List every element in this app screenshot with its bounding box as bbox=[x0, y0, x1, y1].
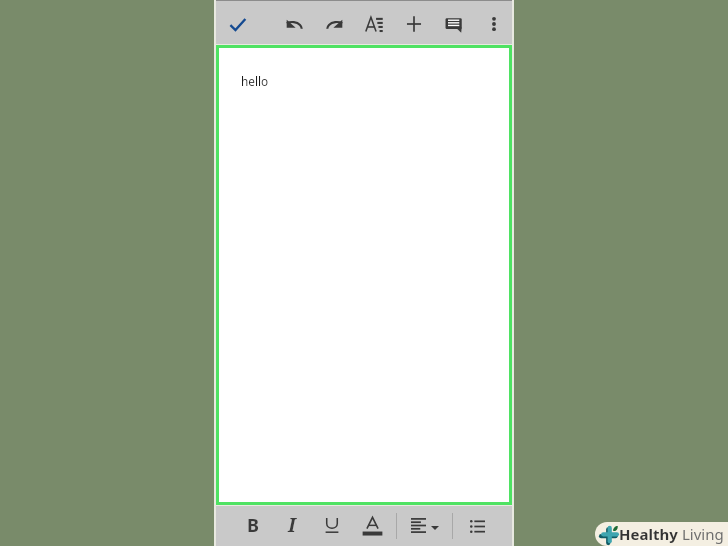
staticText: hello bbox=[241, 73, 269, 89]
staticText: I bbox=[288, 512, 296, 538]
button[interactable]: Bold bbox=[236, 508, 270, 542]
button[interactable]: Redo bbox=[317, 7, 351, 41]
staticText: B bbox=[247, 513, 259, 538]
button[interactable]: Done bbox=[221, 7, 255, 41]
button[interactable]: Insert bbox=[397, 7, 431, 41]
button[interactable]: Italic bbox=[275, 508, 309, 542]
staticText: Living bbox=[682, 524, 724, 544]
button[interactable]: Comments bbox=[437, 7, 471, 41]
button[interactable]: Text colour bbox=[355, 509, 389, 543]
staticText: Healthy bbox=[619, 524, 678, 544]
button[interactable]: Text formatting bbox=[357, 7, 391, 41]
button[interactable]: More options bbox=[477, 7, 511, 41]
button[interactable]: Undo bbox=[277, 7, 311, 41]
button[interactable]: Underline bbox=[315, 508, 349, 542]
button[interactable]: Paragraph alignment bbox=[406, 508, 444, 544]
button[interactable]: List bbox=[460, 509, 494, 543]
